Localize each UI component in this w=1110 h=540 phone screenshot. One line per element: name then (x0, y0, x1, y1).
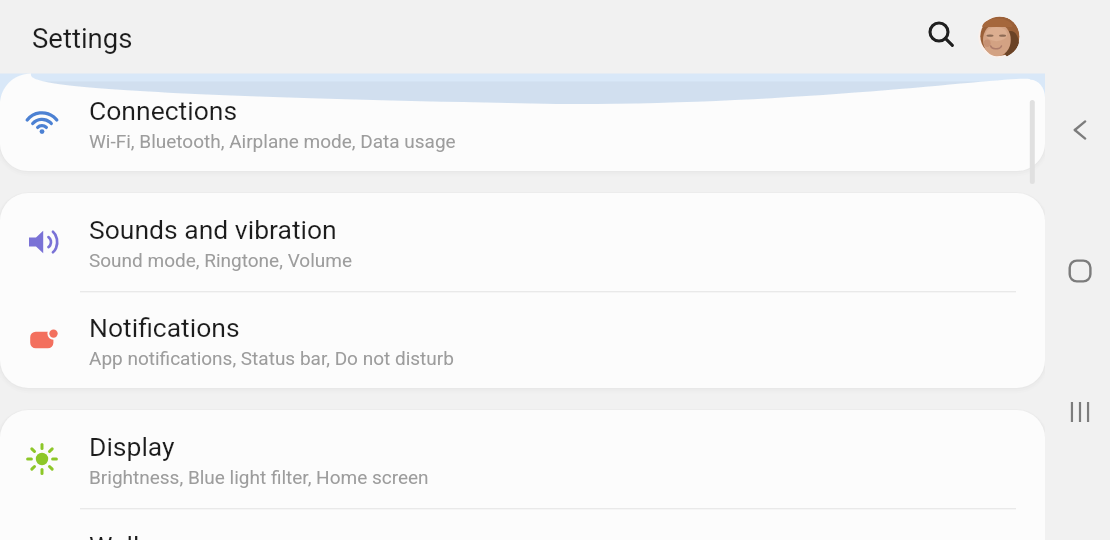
staticText: App notifications, Status bar, Do not di… (89, 347, 454, 369)
button[interactable]: Wallpaper (0, 508, 1045, 540)
button[interactable]: Search (917, 10, 965, 58)
staticText: Wi-Fi, Bluetooth, Airplane mode, Data us… (89, 130, 456, 152)
button[interactable]: Home (1047, 247, 1110, 295)
button[interactable]: Sounds and vibration (0, 193, 1045, 291)
staticText: Display (89, 431, 175, 462)
button[interactable]: Recents (1047, 388, 1110, 436)
button[interactable]: Profile (978, 16, 1020, 58)
button[interactable]: Connections (0, 82, 1045, 171)
button[interactable]: Back (1047, 106, 1110, 154)
staticText: Connections (89, 95, 238, 126)
staticText: Settings (32, 22, 133, 54)
staticText: Sounds and vibration (89, 214, 337, 245)
staticText: Brightness, Blue light filter, Home scre… (89, 466, 429, 488)
button[interactable]: Display (0, 410, 1045, 508)
staticText: Sound mode, Ringtone, Volume (89, 249, 352, 271)
staticText: Wallpaper (89, 530, 207, 540)
button[interactable]: Notifications (0, 291, 1045, 388)
staticText: Notifications (89, 312, 240, 343)
